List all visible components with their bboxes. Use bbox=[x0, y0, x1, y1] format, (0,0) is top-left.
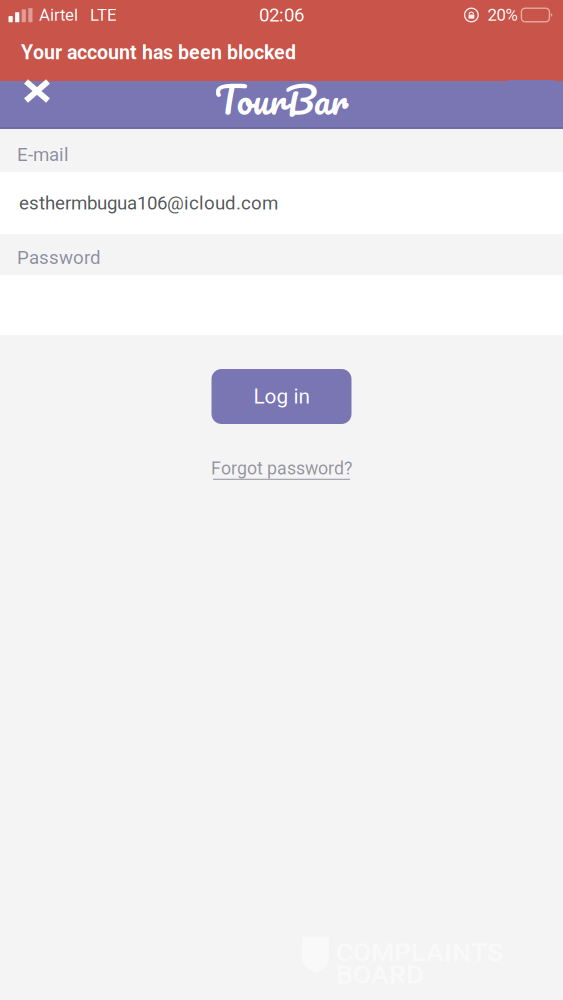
button[interactable]: Forgot password? bbox=[211, 458, 352, 480]
staticText: 02:06 bbox=[259, 4, 304, 26]
staticText: Airtel bbox=[39, 5, 78, 25]
staticText: esthermbugua106@icloud.com bbox=[19, 192, 278, 214]
staticText: Your account has been blocked bbox=[21, 41, 296, 64]
staticText: E-mail bbox=[17, 144, 69, 165]
button[interactable]: Log in bbox=[211, 369, 351, 424]
staticText: Log in bbox=[253, 384, 309, 409]
staticText: 20% bbox=[487, 5, 517, 25]
button[interactable]: Close bbox=[9, 80, 55, 128]
staticText: Forgot password? bbox=[211, 458, 352, 479]
staticText: Password bbox=[17, 247, 101, 268]
staticText: LTE bbox=[90, 5, 117, 25]
button[interactable]: esthermbugua106@icloud.com bbox=[0, 172, 563, 234]
staticText: TourBar bbox=[214, 68, 348, 131]
